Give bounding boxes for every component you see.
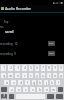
button[interactable]: recording 10 [0,41,64,46]
button[interactable]: g [32,80,36,85]
staticText: p [60,74,62,78]
button[interactable]: 0 [59,65,63,71]
button[interactable]: ?123 [1,94,7,99]
button[interactable]: 2 [8,65,13,71]
button[interactable]: 6 [35,65,39,71]
staticText: 0 [60,66,62,70]
staticText: b [39,88,41,92]
button[interactable]: a [4,80,9,85]
button[interactable]: f [25,80,30,85]
staticText: ?123 [1,94,7,99]
staticText: q [3,74,5,78]
staticText: c [25,88,27,92]
button[interactable]: b [37,87,42,92]
button[interactable]: 4 [22,65,27,71]
button[interactable]: e [15,73,20,78]
staticText: z [11,88,13,92]
staticText: j [46,81,47,85]
staticText: s [13,81,15,85]
button[interactable]: i [47,73,51,78]
button[interactable]: v [30,87,35,92]
button[interactable]: r [22,73,27,78]
button[interactable]: p [59,73,63,78]
staticText: recording 10 [0,42,18,46]
staticText: recording 9 [0,52,16,56]
staticText: t [30,74,32,78]
button[interactable]: u [41,73,45,78]
button[interactable]: d [18,80,23,85]
button[interactable]: o [53,73,57,78]
button[interactable]: 3 [15,65,20,71]
staticText: 6 [36,66,38,70]
staticText: m [52,88,55,92]
staticText: Tap [4,20,9,24]
button[interactable]: q [1,73,6,78]
button[interactable]: Emoji [9,94,14,99]
staticText: n [46,88,48,92]
staticText: d [20,81,22,85]
staticText: g [33,81,35,85]
button[interactable]: 8 [47,65,51,71]
button[interactable]: 9 [53,65,57,71]
staticText: Audio Recorder [5,6,32,11]
staticText: 8 [48,66,50,70]
button[interactable]: 1 [1,65,6,71]
staticText: 1 [3,66,5,70]
button[interactable]: recording 9 [0,51,64,56]
button[interactable]: y [35,73,39,78]
button[interactable]: Period [47,94,54,99]
button[interactable]: Shift [1,87,7,92]
button[interactable]: Audio Recorder icon [1,7,4,10]
staticText: u [42,74,44,78]
staticText: a [6,81,8,85]
staticText: 3 [17,66,19,70]
staticText: l [58,81,59,85]
button[interactable]: Enter [56,94,63,99]
staticText: y [36,74,38,78]
button[interactable]: Backspace [58,87,63,92]
button[interactable]: x [16,87,21,92]
staticText: x [18,88,20,92]
button[interactable]: 5 [29,65,33,71]
staticText: saved! [5,30,14,34]
button[interactable]: z [9,87,14,92]
staticText: rec [0,25,4,29]
staticText: 4 [24,66,26,70]
staticText: k [51,81,53,85]
staticText: i [49,74,50,78]
button[interactable]: Play [48,51,55,56]
button[interactable]: j [44,80,48,85]
button[interactable]: Play [48,41,55,46]
button[interactable]: t [29,73,33,78]
staticText: 5 [30,66,32,70]
button[interactable]: c [23,87,28,92]
button[interactable]: m [51,87,56,92]
staticText: w [9,74,12,78]
button[interactable]: n [44,87,49,92]
staticText: e [17,74,19,78]
staticText: v [32,88,34,92]
staticText: h [39,81,41,85]
staticText: r [24,74,26,78]
button[interactable]: k [50,80,54,85]
staticText: 9 [54,66,56,70]
button[interactable]: 7 [41,65,45,71]
staticText: PLAY [49,52,54,55]
staticText: f [27,81,28,85]
staticText: 2 [10,66,12,70]
button[interactable]: l [56,80,60,85]
button[interactable]: s [11,80,16,85]
button[interactable]: h [38,80,42,85]
button[interactable]: w [8,73,13,78]
staticText: 7 [42,66,44,70]
staticText: o [54,74,56,78]
staticText: PLAY [49,42,54,45]
